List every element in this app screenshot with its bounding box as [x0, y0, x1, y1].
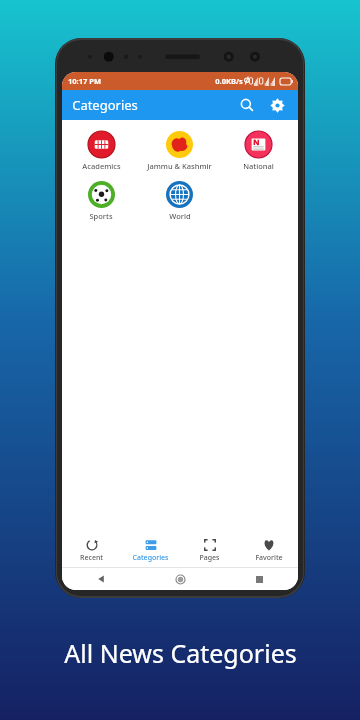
staticText: Categories	[72, 96, 138, 114]
button[interactable]: Pages	[180, 537, 239, 565]
staticText: 10:17 PM	[68, 76, 101, 86]
staticText: Pages	[199, 553, 220, 563]
button[interactable]: Settings	[264, 92, 290, 118]
button[interactable]: National	[219, 126, 298, 176]
staticText: Jammu & Kashmir	[147, 161, 212, 171]
staticText: Categories	[132, 553, 169, 563]
button[interactable]: Sports	[62, 176, 140, 226]
staticText: Recent	[80, 553, 103, 563]
button[interactable]: Recents	[250, 570, 268, 588]
staticText: National	[243, 161, 274, 171]
button[interactable]: Jammu & Kashmir	[140, 126, 219, 176]
staticText: Sports	[89, 211, 113, 221]
staticText: All News Categories	[64, 636, 297, 670]
button[interactable]: Home	[171, 570, 189, 588]
button[interactable]: Back	[92, 570, 110, 588]
button[interactable]: Recent	[62, 537, 121, 565]
button[interactable]: Favorite	[239, 537, 298, 565]
button[interactable]: Search	[234, 92, 260, 118]
staticText: World	[169, 211, 191, 221]
staticText: Academics	[82, 161, 121, 171]
button[interactable]: Academics	[62, 126, 140, 176]
staticText: 0.0KB/s	[215, 76, 243, 86]
button[interactable]: Categories	[121, 537, 180, 565]
button[interactable]: World	[140, 176, 219, 226]
staticText: Favorite	[255, 553, 283, 563]
